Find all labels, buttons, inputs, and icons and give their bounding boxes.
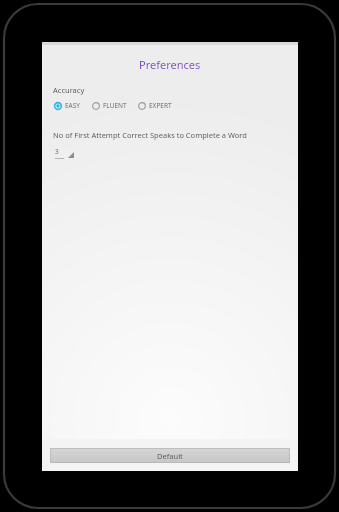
staticText: 3 (55, 147, 59, 156)
button[interactable]: EXPERT (137, 100, 173, 111)
button[interactable]: Select number of correct speaks (55, 147, 79, 159)
staticText: Accuracy (53, 85, 85, 95)
button[interactable]: FLUENT (91, 100, 128, 111)
staticText: FLUENT (103, 101, 127, 110)
staticText: EXPERT (149, 101, 172, 110)
button[interactable]: Default (50, 448, 290, 463)
staticText: Preferences (139, 57, 201, 72)
staticText: EASY (65, 101, 81, 110)
button[interactable]: EASY (53, 100, 82, 111)
staticText: No of First Attempt Correct Speaks to Co… (53, 130, 247, 140)
staticText: Default (157, 451, 183, 461)
